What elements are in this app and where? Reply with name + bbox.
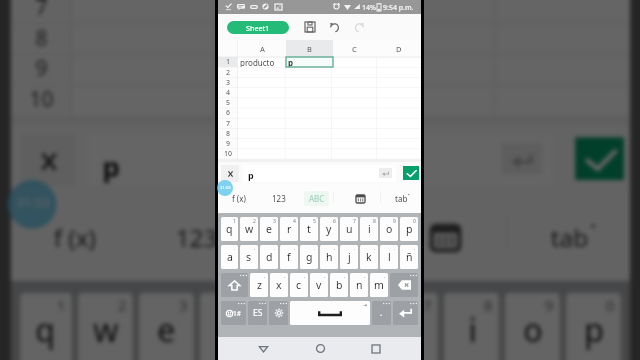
staticText: 8 xyxy=(226,129,231,139)
staticText: a xyxy=(227,250,233,264)
button[interactable]: Language xyxy=(248,301,267,325)
button[interactable]: Save xyxy=(299,14,320,40)
button[interactable]: Shift xyxy=(221,273,248,297)
button[interactable]: d xyxy=(260,245,278,269)
button[interactable]: q xyxy=(221,217,238,241)
button[interactable]: x xyxy=(270,273,288,297)
button[interactable]: Undo xyxy=(324,14,345,40)
button[interactable]: f xyxy=(280,245,298,269)
button[interactable]: producto xyxy=(238,57,286,67)
button[interactable]: g xyxy=(300,245,318,269)
staticText: 3 xyxy=(226,78,231,88)
staticText: v xyxy=(316,278,322,292)
button[interactable]: t xyxy=(300,217,318,241)
staticText: i xyxy=(468,308,477,351)
button[interactable]: Enter xyxy=(393,301,418,325)
button[interactable]: i xyxy=(360,217,378,241)
staticText: producto xyxy=(240,57,275,67)
staticText: 9 xyxy=(35,55,51,85)
button[interactable]: j xyxy=(340,245,358,269)
button[interactable]: b xyxy=(330,273,348,297)
staticText: b xyxy=(336,278,343,292)
button[interactable]: s xyxy=(240,245,258,269)
staticText: 10 xyxy=(224,149,233,159)
staticText: f xyxy=(287,250,291,264)
button[interactable]: Recents xyxy=(364,337,388,360)
button[interactable]: Cancel xyxy=(221,165,239,182)
button[interactable]: r xyxy=(280,217,298,241)
staticText: 7 xyxy=(353,218,356,225)
staticText: C xyxy=(352,44,357,54)
staticText: e xyxy=(157,308,176,351)
staticText: · xyxy=(314,246,316,253)
button[interactable]: n xyxy=(350,273,368,297)
staticText: l xyxy=(388,250,391,264)
staticText: · xyxy=(374,246,376,253)
button[interactable]: Redo xyxy=(349,14,370,40)
button[interactable]: Symbols xyxy=(221,301,246,325)
button[interactable]: ABC xyxy=(300,184,332,213)
button[interactable]: w xyxy=(240,217,258,241)
staticText: · xyxy=(294,246,296,253)
button[interactable]: Date xyxy=(340,184,380,213)
button[interactable]: tab xyxy=(381,184,421,213)
staticText: · xyxy=(414,246,416,253)
button[interactable]: l xyxy=(380,245,398,269)
staticText: 6 xyxy=(226,108,231,118)
staticText: n xyxy=(356,278,363,292)
button[interactable]: 123 xyxy=(260,184,297,213)
button[interactable]: D xyxy=(377,40,421,57)
button[interactable]: Sheet1 xyxy=(227,21,289,34)
staticText: 8 xyxy=(35,24,51,55)
button[interactable]: a xyxy=(221,245,238,269)
staticText: · xyxy=(334,246,336,253)
staticText: ABC xyxy=(288,220,337,253)
button[interactable]: ñ xyxy=(400,245,418,269)
staticText: . xyxy=(380,307,383,319)
staticText: t xyxy=(307,222,311,236)
button[interactable]: Settings xyxy=(269,301,288,325)
button[interactable]: u xyxy=(340,217,358,241)
button[interactable]: p xyxy=(286,57,333,67)
button[interactable]: h xyxy=(320,245,338,269)
button[interactable]: Back xyxy=(251,337,275,360)
staticText: • xyxy=(590,217,596,235)
button[interactable]: A xyxy=(238,40,286,57)
button[interactable]: k xyxy=(360,245,378,269)
staticText: w xyxy=(245,222,254,236)
staticText: y xyxy=(340,308,359,351)
staticText: q xyxy=(35,308,57,351)
staticText: 9:54 p.m. xyxy=(383,3,414,13)
button[interactable]: Period xyxy=(372,301,391,325)
button[interactable]: c xyxy=(290,273,308,297)
button[interactable]: f (x) xyxy=(220,184,257,213)
button[interactable]: e xyxy=(260,217,278,241)
button[interactable]: Confirm xyxy=(403,166,419,180)
staticText: 21:53 xyxy=(17,195,50,214)
staticText: f (x) xyxy=(232,193,246,204)
staticText: tab xyxy=(395,193,408,204)
staticText: Sheet1 xyxy=(246,23,270,33)
staticText: j xyxy=(348,250,351,264)
button[interactable]: v xyxy=(310,273,328,297)
staticText: 14% xyxy=(362,3,376,13)
staticText: 5 xyxy=(226,98,231,108)
button[interactable]: p xyxy=(400,217,418,241)
button[interactable]: m xyxy=(370,273,388,297)
staticText: k xyxy=(366,250,372,264)
staticText: tab xyxy=(551,220,590,253)
staticText: o xyxy=(386,222,393,236)
staticText: ABC xyxy=(309,193,325,204)
button[interactable]: z xyxy=(250,273,268,297)
staticText: p xyxy=(102,146,121,183)
button[interactable]: Home xyxy=(308,337,332,360)
button[interactable]: y xyxy=(320,217,338,241)
button[interactable]: B xyxy=(286,40,333,57)
button[interactable]: Backspace xyxy=(390,273,418,297)
staticText: 6 xyxy=(362,296,371,317)
staticText: 4 xyxy=(293,218,296,225)
button[interactable]: Space xyxy=(290,301,370,325)
button[interactable]: o xyxy=(380,217,398,241)
button[interactable]: C xyxy=(332,40,377,57)
staticText: 3 xyxy=(273,218,276,225)
